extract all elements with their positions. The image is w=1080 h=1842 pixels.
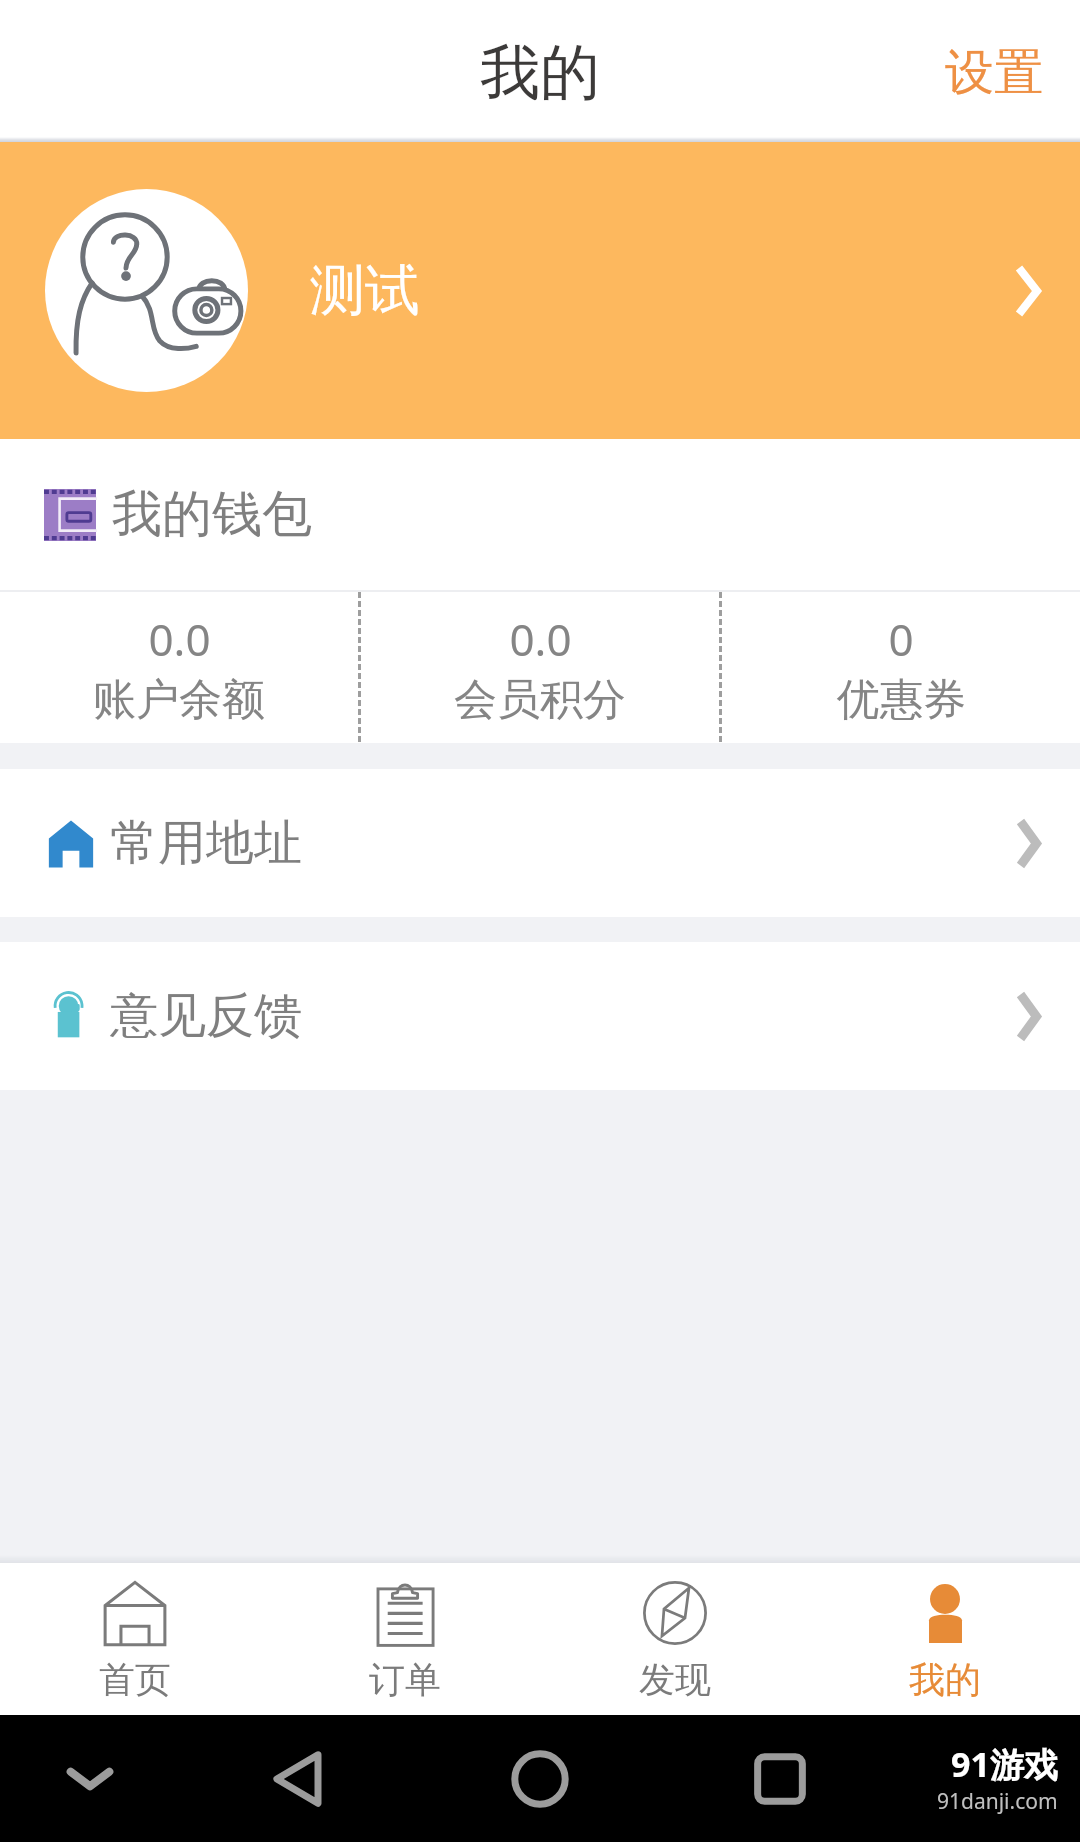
staticText: 账户余额 — [93, 673, 265, 727]
staticText: 测试 — [310, 256, 420, 325]
button[interactable]: 测试 — [0, 142, 1080, 439]
staticText: 首页 — [99, 1657, 171, 1702]
button[interactable]: 设置 — [905, 14, 1080, 128]
button[interactable]: 首页 — [0, 1563, 270, 1715]
staticText: 订单 — [369, 1657, 441, 1702]
button[interactable]: Recents — [750, 1749, 810, 1809]
button[interactable]: Home — [510, 1749, 570, 1809]
staticText: 0 — [888, 609, 914, 669]
staticText: 优惠券 — [837, 673, 966, 727]
button[interactable]: Back — [270, 1749, 330, 1809]
staticText: 会员积分 — [454, 673, 626, 727]
staticText: 常用地址 — [110, 813, 302, 873]
staticText: 意见反馈 — [110, 986, 302, 1046]
button[interactable]: 0.0 — [361, 592, 719, 743]
staticText: 0.0 — [148, 609, 211, 669]
button[interactable]: 我的 — [810, 1563, 1080, 1715]
staticText: 我的 — [480, 35, 600, 111]
button[interactable]: 订单 — [270, 1563, 540, 1715]
button[interactable]: 意见反馈 — [0, 942, 1080, 1090]
staticText: 发现 — [639, 1657, 711, 1702]
button[interactable]: 0 — [722, 592, 1080, 743]
staticText: 91danji.com — [937, 1787, 1058, 1816]
button[interactable]: 发现 — [540, 1563, 810, 1715]
staticText: 我的 — [909, 1657, 981, 1702]
staticText: 0.0 — [509, 609, 572, 669]
staticText: 91游戏 — [951, 1741, 1058, 1787]
button[interactable]: 0.0 — [0, 592, 358, 743]
staticText: 我的钱包 — [112, 483, 312, 546]
button[interactable]: Hide keyboard — [68, 1766, 112, 1792]
staticText: 设置 — [945, 42, 1043, 104]
button[interactable]: 我的钱包 — [0, 439, 1080, 590]
button[interactable]: 常用地址 — [0, 769, 1080, 917]
